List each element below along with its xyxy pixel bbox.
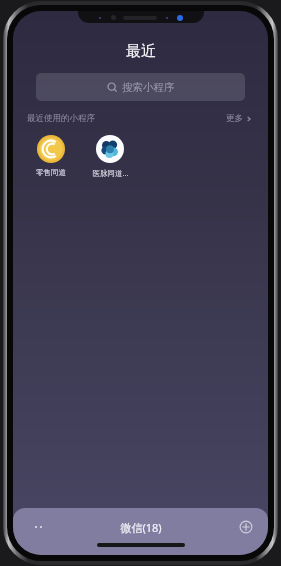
- staticText: 最近: [126, 42, 156, 61]
- staticText: 医脉同道...: [92, 168, 129, 178]
- staticText: 零售同道: [36, 168, 66, 177]
- button[interactable]: More: [25, 514, 51, 540]
- button[interactable]: 零售同道: [21, 132, 80, 180]
- button[interactable]: 微信(18): [120, 514, 162, 540]
- button[interactable]: 医脉同道...: [80, 132, 140, 181]
- staticText: 最近使用的小程序: [27, 113, 95, 124]
- button[interactable]: Add: [233, 514, 259, 540]
- staticText: 搜索小程序: [122, 81, 175, 94]
- staticText: 微信(18): [120, 520, 162, 535]
- button[interactable]: 更多: [224, 111, 254, 126]
- staticText: 更多: [226, 113, 243, 124]
- button[interactable]: 搜索小程序: [36, 73, 245, 101]
